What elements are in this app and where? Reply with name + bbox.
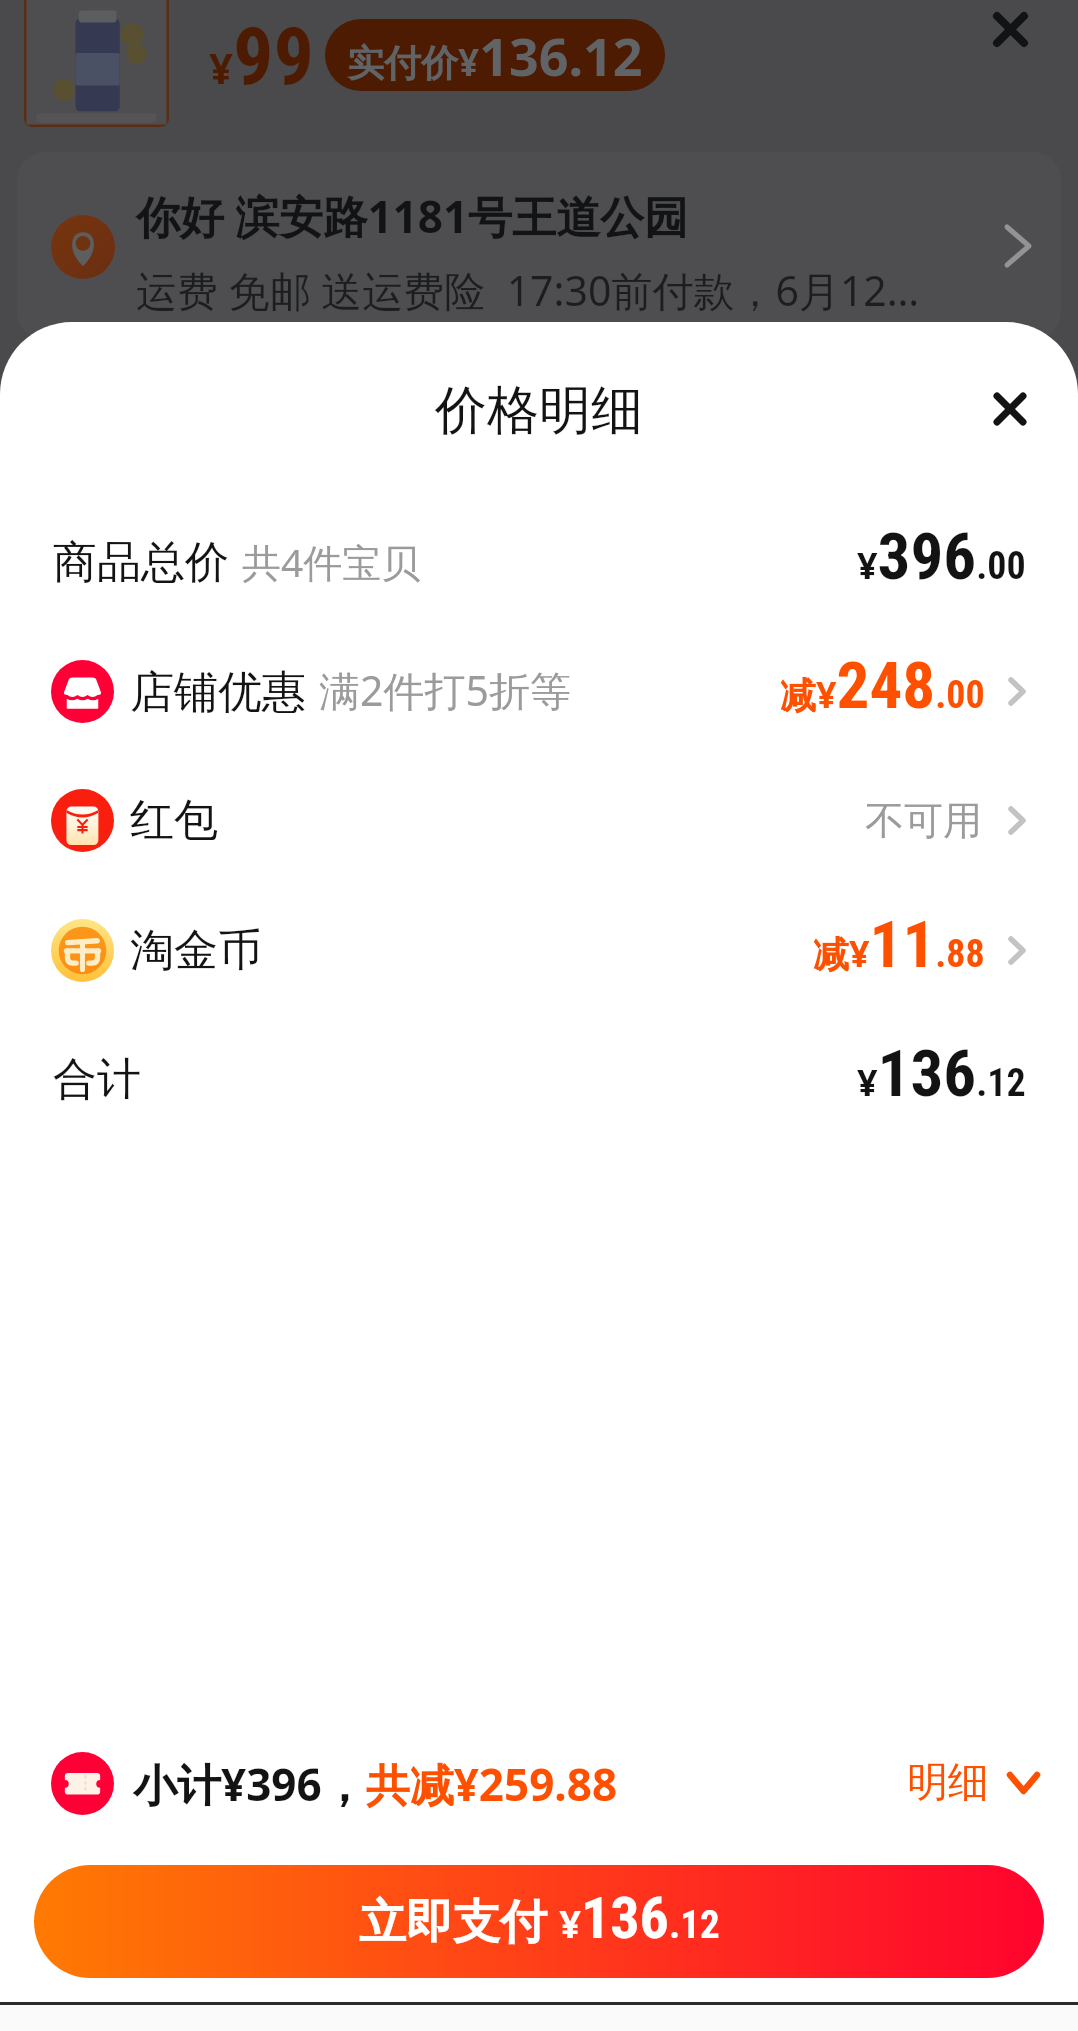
staticText: 合计 bbox=[53, 1052, 141, 1107]
button[interactable]: 立即支付 ¥136.12 bbox=[34, 1865, 1044, 1978]
staticText: 立即支付 ¥136.12 bbox=[359, 1884, 720, 1952]
staticText: 小计¥396，共减¥259.88 bbox=[133, 1754, 618, 1814]
staticText: 减¥11.88 bbox=[813, 907, 985, 983]
staticText: 你好 滨安路1181号王道公园 bbox=[136, 186, 689, 246]
staticText: 价格明细 bbox=[435, 378, 643, 444]
staticText: 不可用 bbox=[865, 796, 982, 845]
staticText: ¥136.12 bbox=[857, 1036, 1026, 1112]
button[interactable]: 小计¥396，共减¥259.88 bbox=[51, 1752, 618, 1815]
button[interactable]: 商品总价 bbox=[0, 498, 1078, 626]
staticText: 商品总价 bbox=[53, 535, 229, 590]
staticText: 店铺优惠 bbox=[130, 665, 306, 720]
staticText: 减¥248.00 bbox=[780, 648, 985, 724]
staticText: 红包 bbox=[130, 793, 218, 848]
staticText: ¥99 bbox=[209, 10, 314, 104]
staticText: ¥396.00 bbox=[857, 519, 1026, 595]
staticText: 运费 免邮 送运费险 17:30前付款，6月12… bbox=[136, 262, 920, 318]
staticText: 实付价¥136.12 bbox=[347, 20, 643, 91]
staticText: 满2件打5折等 bbox=[319, 662, 571, 718]
staticText: 共4件宝贝 bbox=[242, 535, 421, 588]
button[interactable]: 合计 bbox=[0, 1015, 1078, 1143]
button[interactable]: 店铺优惠 bbox=[0, 627, 1078, 755]
button[interactable]: Close page bbox=[974, 0, 1046, 65]
button[interactable]: 红包 bbox=[0, 756, 1078, 884]
button[interactable]: 明细 bbox=[907, 1757, 1040, 1809]
staticText: 淘金币 bbox=[130, 923, 262, 978]
button[interactable]: 你好 滨安路1181号王道公园 bbox=[17, 152, 1061, 340]
button[interactable]: Close bbox=[974, 373, 1046, 445]
button[interactable]: 淘金币 bbox=[0, 886, 1078, 1014]
staticText: 明细 bbox=[907, 1757, 989, 1809]
